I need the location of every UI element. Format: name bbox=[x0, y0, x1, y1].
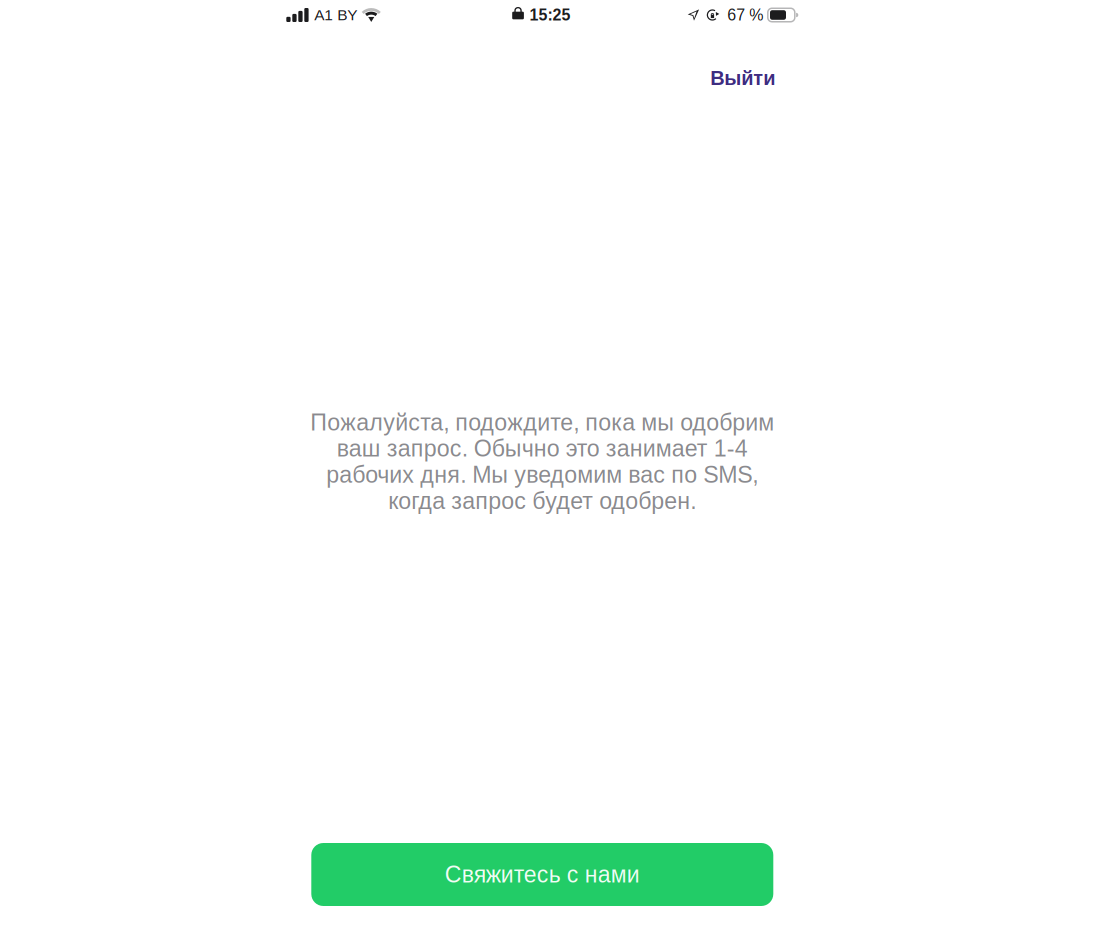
staticText: Пожалуйста, подождите, пока мы одобрим bbox=[310, 409, 774, 435]
button[interactable]: Выйти bbox=[686, 54, 798, 102]
staticText: A1 BY bbox=[314, 6, 357, 24]
staticText: 15:25 bbox=[529, 6, 570, 24]
button[interactable]: Свяжитесь с нами bbox=[311, 843, 773, 906]
staticText: Выйти bbox=[710, 67, 775, 89]
staticText: ваш запрос. Обычно это занимает 1-4 bbox=[337, 436, 748, 461]
staticText: рабочих дня. Мы уведомим вас по SMS, bbox=[326, 462, 758, 488]
staticText: когда запрос будет одобрен. bbox=[388, 488, 696, 514]
staticText: 67 % bbox=[727, 6, 763, 24]
staticText: Свяжитесь с нами bbox=[445, 862, 640, 887]
